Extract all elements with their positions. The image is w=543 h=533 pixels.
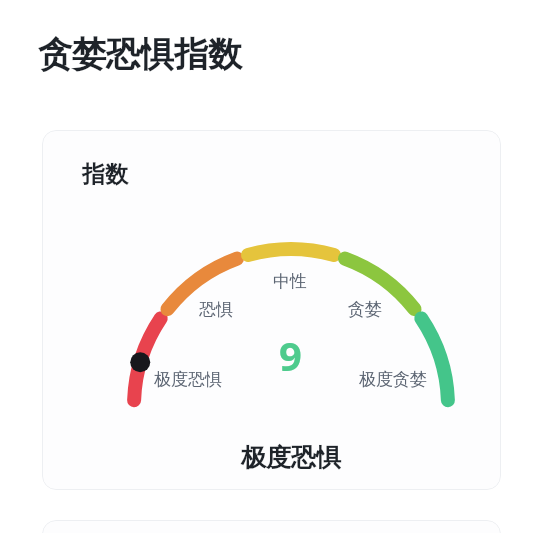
staticText: 恐惧 — [199, 299, 233, 320]
staticText: 极度贪婪 — [359, 369, 427, 390]
other: Fear and greed gauge — [42, 130, 501, 490]
button[interactable] — [42, 520, 501, 533]
button[interactable]: 指数 — [42, 130, 501, 490]
staticText: 极度恐惧 — [241, 442, 341, 473]
staticText: 极度恐惧 — [154, 369, 222, 390]
staticText: 中性 — [273, 271, 307, 292]
staticText: 指数 — [82, 160, 128, 189]
staticText: 贪婪恐惧指数 — [38, 33, 242, 76]
staticText: 贪婪 — [348, 299, 382, 320]
staticText: 9 — [279, 328, 302, 378]
